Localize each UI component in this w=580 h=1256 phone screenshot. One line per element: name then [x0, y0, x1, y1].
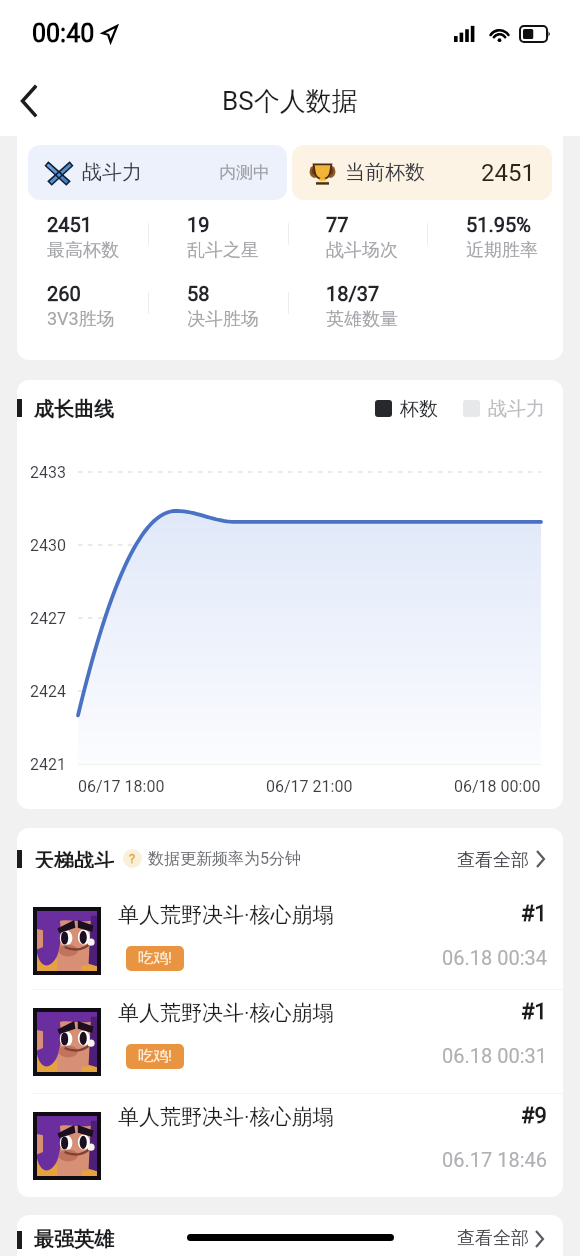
staticText: 当前杯数: [345, 160, 425, 185]
staticText: 杯数: [400, 397, 438, 419]
button[interactable]: Back: [10, 81, 50, 121]
staticText: 18/37: [326, 282, 380, 305]
staticText: 06.18 00:31: [442, 1044, 547, 1067]
staticText: 英雄数量: [326, 308, 398, 331]
staticText: 战斗场次: [326, 239, 398, 262]
button[interactable]: 查看全部: [457, 849, 545, 868]
staticText: 最高杯数: [47, 239, 119, 262]
staticText: 数据更新频率为5分钟: [148, 849, 301, 868]
staticText: 06.18 00:34: [442, 946, 547, 969]
button[interactable]: 战斗力: [28, 145, 287, 200]
staticText: 58: [187, 282, 210, 305]
staticText: 最强英雄: [34, 1227, 114, 1252]
button[interactable]: 查看全部: [457, 1227, 544, 1250]
button[interactable]: 单人荒野决斗·核心崩塌: [17, 892, 563, 990]
button[interactable]: 单人荒野决斗·核心崩塌: [17, 990, 563, 1094]
staticText: 77: [326, 213, 349, 236]
staticText: 单人荒野决斗·核心崩塌: [118, 902, 334, 928]
staticText: #9: [521, 1103, 547, 1129]
staticText: 2451: [481, 159, 535, 187]
staticText: 战斗力: [488, 397, 545, 419]
staticText: #1: [521, 901, 547, 927]
staticText: 51.95%: [466, 213, 531, 236]
staticText: 19: [187, 213, 210, 236]
staticText: 3V3胜场: [47, 308, 115, 331]
button[interactable]: 单人荒野决斗·核心崩塌: [17, 1094, 563, 1197]
staticText: 战斗力: [82, 160, 142, 185]
staticText: 单人荒野决斗·核心崩塌: [118, 1104, 334, 1130]
staticText: 内测中: [219, 162, 270, 183]
staticText: 决斗胜场: [187, 308, 259, 331]
staticText: 2451: [47, 213, 92, 236]
staticText: #1: [521, 999, 547, 1025]
staticText: 单人荒野决斗·核心崩塌: [118, 1000, 334, 1026]
staticText: ?: [129, 851, 136, 866]
staticText: BS个人数据: [222, 85, 358, 118]
staticText: 吃鸡!: [138, 949, 172, 968]
staticText: 260: [47, 282, 81, 305]
staticText: 06.17 18:46: [442, 1148, 547, 1171]
staticText: 查看全部: [457, 1227, 529, 1250]
staticText: 00:40: [32, 19, 95, 48]
staticText: 近期胜率: [466, 239, 538, 262]
button[interactable]: 当前杯数: [292, 145, 552, 200]
staticText: 天梯战斗: [34, 849, 114, 868]
staticText: 乱斗之星: [187, 239, 259, 262]
staticText: 成长曲线: [34, 397, 114, 419]
staticText: 吃鸡!: [138, 1047, 172, 1066]
staticText: 查看全部: [457, 849, 529, 868]
